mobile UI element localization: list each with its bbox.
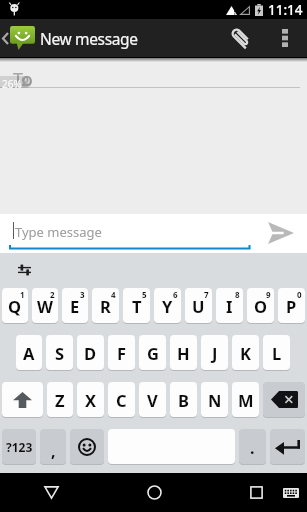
button[interactable]: V <box>139 382 166 417</box>
button[interactable]: Switch keyboard <box>275 473 307 512</box>
staticText: X <box>85 389 97 411</box>
button[interactable]: G <box>139 335 166 370</box>
button[interactable]: Z <box>47 382 73 417</box>
staticText: 0 <box>297 289 302 300</box>
staticText: 26% <box>2 77 22 91</box>
staticText: U <box>192 295 205 317</box>
staticText: 6 <box>173 289 178 300</box>
button[interactable]: O <box>247 288 274 323</box>
staticText: 8 <box>235 289 240 300</box>
staticText: 3 <box>80 289 85 300</box>
staticText: K <box>240 342 251 364</box>
staticText: Z <box>55 389 65 411</box>
button[interactable]: Period <box>239 429 266 464</box>
button[interactable]: Attach <box>218 19 263 57</box>
staticText: 2 <box>50 289 55 300</box>
staticText: Y <box>162 295 173 317</box>
button[interactable]: Shift <box>2 382 43 417</box>
staticText: J <box>212 342 218 364</box>
button[interactable]: Keyboard settings <box>14 260 34 280</box>
staticText: ?123 <box>6 439 33 455</box>
button[interactable]: R <box>92 288 119 323</box>
button[interactable]: K <box>232 335 259 370</box>
button[interactable]: Backspace <box>263 382 305 417</box>
button[interactable]: Send <box>251 214 307 253</box>
button[interactable]: Symbols <box>2 429 36 464</box>
staticText: P <box>286 295 297 317</box>
staticText: A <box>23 342 35 364</box>
button[interactable]: Navigate up <box>0 19 35 57</box>
button[interactable]: Recents <box>205 473 307 512</box>
staticText: G <box>147 342 159 364</box>
button[interactable]: Comma <box>40 429 66 464</box>
button[interactable]: U <box>185 288 212 323</box>
staticText: I <box>226 295 233 317</box>
staticText: B <box>178 389 189 411</box>
staticText: C <box>116 389 127 411</box>
button[interactable]: I <box>216 288 243 323</box>
staticText: 11:14 <box>268 1 303 19</box>
staticText: . <box>250 437 255 459</box>
button[interactable]: F <box>108 335 135 370</box>
button[interactable]: C <box>108 382 135 417</box>
staticText: 4 <box>111 289 116 300</box>
button[interactable]: More options <box>263 19 307 57</box>
staticText: S <box>55 342 65 364</box>
staticText: H <box>177 342 190 364</box>
button[interactable]: S <box>46 335 73 370</box>
button[interactable]: L <box>263 335 290 370</box>
staticText: O <box>254 295 268 317</box>
button[interactable]: J <box>201 335 228 370</box>
staticText: W <box>37 295 53 317</box>
button[interactable]: Home <box>103 473 205 512</box>
staticText: M <box>238 389 254 411</box>
button[interactable]: Y <box>154 288 181 323</box>
staticText: Q <box>8 295 22 317</box>
staticText: 1 <box>20 289 25 300</box>
staticText: E <box>70 295 80 317</box>
staticText: 9 <box>266 289 271 300</box>
staticText: 7 <box>204 289 209 300</box>
staticText: , <box>51 440 56 462</box>
staticText: L <box>272 342 282 364</box>
button[interactable]: W <box>32 288 58 323</box>
staticText: N <box>208 389 222 411</box>
staticText: F <box>117 342 127 364</box>
button[interactable]: M <box>232 382 259 417</box>
staticText: Type message <box>15 223 102 241</box>
button[interactable]: To <box>0 62 307 92</box>
staticText: D <box>84 342 97 364</box>
staticText: V <box>147 389 158 411</box>
staticText: 5 <box>142 289 147 300</box>
staticText: T <box>132 295 142 317</box>
button[interactable]: X <box>77 382 104 417</box>
button[interactable]: B <box>170 382 197 417</box>
button[interactable]: N <box>201 382 228 417</box>
staticText: To <box>13 67 33 92</box>
button[interactable]: Back <box>0 473 103 512</box>
button[interactable]: E <box>62 288 88 323</box>
button[interactable]: D <box>77 335 104 370</box>
button[interactable]: A <box>16 335 42 370</box>
staticText: R <box>100 295 111 317</box>
button[interactable]: T <box>123 288 150 323</box>
button[interactable]: Q <box>2 288 28 323</box>
button[interactable]: Emoji <box>70 429 104 464</box>
staticText: New message <box>40 28 138 49</box>
button[interactable]: H <box>170 335 197 370</box>
button[interactable]: P <box>278 288 305 323</box>
button[interactable]: Enter <box>270 429 305 464</box>
